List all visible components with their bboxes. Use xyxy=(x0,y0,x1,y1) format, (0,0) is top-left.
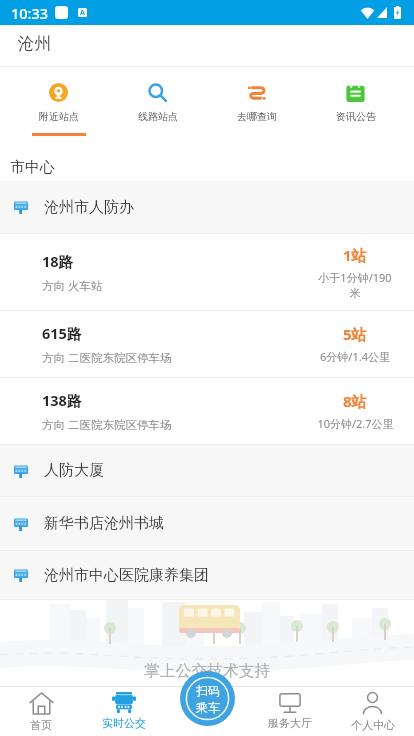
staticText: 1站 xyxy=(343,245,367,265)
button[interactable]: 线路站点 xyxy=(108,67,207,153)
button[interactable]: 附近站点 xyxy=(9,67,108,153)
staticText: 方向 火车站 xyxy=(42,278,103,294)
staticText: 小于1分钟/190米 xyxy=(315,270,395,300)
button[interactable]: 18路 xyxy=(0,234,414,310)
staticText: 6分钟/1.4公里 xyxy=(320,349,390,364)
button[interactable]: 新华书店沧州书城 xyxy=(0,497,414,550)
staticText: 沧州市中心医院康养集团 xyxy=(44,566,209,585)
button[interactable]: 沧州市人防办 xyxy=(0,181,414,233)
staticText: 去哪查询 xyxy=(237,110,277,123)
staticText: 附近站点 xyxy=(39,110,79,123)
staticText: 615路 xyxy=(42,323,82,343)
staticText: 方向 二医院东院区停车场 xyxy=(42,417,172,433)
staticText: 线路站点 xyxy=(138,110,178,123)
staticText: 新华书店沧州书城 xyxy=(44,514,164,533)
staticText: 138路 xyxy=(42,390,82,410)
staticText: 5站 xyxy=(343,324,367,344)
button[interactable]: 沧州市中心医院康养集团 xyxy=(0,551,414,599)
staticText: 方向 二医院东院区停车场 xyxy=(42,350,172,366)
staticText: 首页 xyxy=(30,718,52,732)
button[interactable]: 去哪查询 xyxy=(207,67,306,153)
staticText: 实时公交 xyxy=(102,716,146,730)
staticText: 沧州 xyxy=(18,33,52,54)
button[interactable]: 实时公交 xyxy=(82,687,165,736)
button[interactable]: 个人中心 xyxy=(331,687,414,736)
staticText: A xyxy=(80,8,85,17)
staticText: 18路 xyxy=(42,251,74,271)
staticText: 扫码 xyxy=(196,683,220,698)
staticText: 10:33 xyxy=(11,3,49,23)
button[interactable]: 扫码乘车 xyxy=(180,671,235,726)
staticText: 沧州市人防办 xyxy=(44,198,134,217)
button[interactable]: 服务大厅 xyxy=(248,687,331,736)
staticText: 掌上公交技术支持 xyxy=(144,661,271,681)
button[interactable]: 资讯公告 xyxy=(306,67,405,153)
staticText: 服务大厅 xyxy=(268,716,312,730)
button[interactable]: 138路 xyxy=(0,378,414,444)
staticText: 市中心 xyxy=(10,158,55,177)
button[interactable]: 首页 xyxy=(0,687,82,736)
staticText: 个人中心 xyxy=(351,718,395,732)
staticText: 资讯公告 xyxy=(336,110,376,123)
staticText: 乘车 xyxy=(196,700,220,715)
staticText: 10分钟/2.7公里 xyxy=(317,416,394,431)
button[interactable]: 人防大厦 xyxy=(0,445,414,496)
staticText: 8站 xyxy=(343,391,367,411)
button[interactable]: 615路 xyxy=(0,311,414,377)
staticText: 人防大厦 xyxy=(44,461,104,480)
